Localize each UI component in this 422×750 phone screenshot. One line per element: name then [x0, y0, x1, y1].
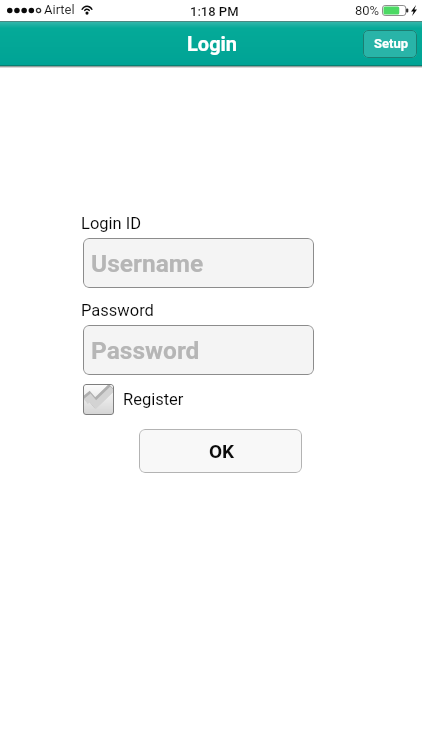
staticText: Airtel: [44, 2, 75, 17]
staticText: Setup: [374, 36, 409, 51]
staticText: 1:18 PM: [190, 4, 239, 19]
staticText: Login ID: [81, 214, 142, 233]
staticText: Password: [81, 301, 154, 320]
staticText: Username: [91, 249, 204, 278]
button[interactable]: Setup: [363, 30, 417, 58]
staticText: OK: [209, 440, 235, 462]
other: Register checkbox: [83, 384, 114, 415]
staticText: 80%: [355, 3, 380, 18]
button[interactable]: Username: [83, 238, 314, 288]
button[interactable]: Register checkbox: [83, 384, 188, 416]
button[interactable]: OK: [139, 429, 302, 473]
staticText: Login: [187, 32, 238, 55]
staticText: Password: [91, 336, 200, 365]
button[interactable]: Password: [83, 325, 314, 375]
staticText: Register: [123, 390, 184, 409]
